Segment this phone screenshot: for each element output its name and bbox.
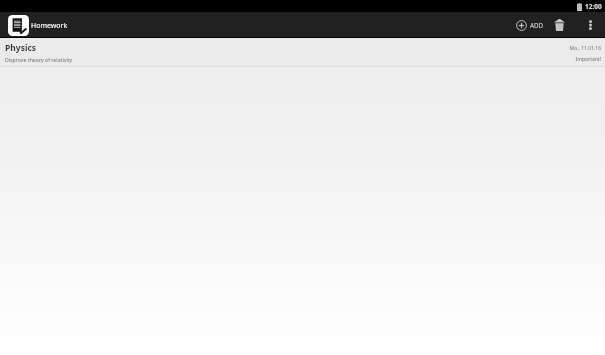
- staticText: ADD: [530, 21, 544, 30]
- button[interactable]: ADD: [511, 17, 547, 34]
- staticText: Homework: [31, 21, 68, 31]
- button[interactable]: Delete: [549, 16, 570, 34]
- button[interactable]: More options: [584, 17, 597, 33]
- staticText: Mo., 11.01.16: [569, 45, 601, 52]
- staticText: Disprove theory of relativity: [5, 56, 73, 63]
- staticText: Important!: [575, 56, 601, 63]
- button[interactable]: Homework: [8, 15, 68, 36]
- staticText: Physics: [5, 42, 37, 54]
- staticText: 12:00: [585, 2, 602, 11]
- button[interactable]: Physics: [0, 38, 605, 67]
